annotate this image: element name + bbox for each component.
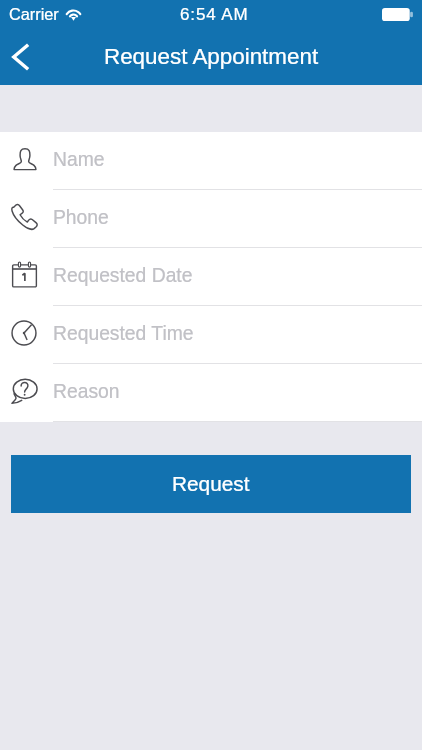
staticText: Requested Date	[53, 265, 193, 287]
button[interactable]: Reason	[0, 364, 422, 422]
staticText: Request	[172, 472, 250, 495]
staticText: Request Appointment	[104, 44, 319, 69]
staticText: 6:54 AM	[180, 5, 249, 24]
staticText: Phone	[53, 207, 109, 229]
staticText: Name	[53, 149, 105, 171]
button[interactable]: Name	[0, 132, 422, 190]
button[interactable]: Phone	[0, 190, 422, 248]
staticText: Carrier	[9, 5, 59, 23]
button[interactable]: Requested Time	[0, 306, 422, 364]
button[interactable]: Request	[11, 455, 411, 513]
staticText: Requested Time	[53, 323, 194, 345]
staticText: Reason	[53, 381, 120, 403]
button[interactable]: Requested Date	[0, 248, 422, 306]
button[interactable]: Back	[0, 35, 44, 79]
